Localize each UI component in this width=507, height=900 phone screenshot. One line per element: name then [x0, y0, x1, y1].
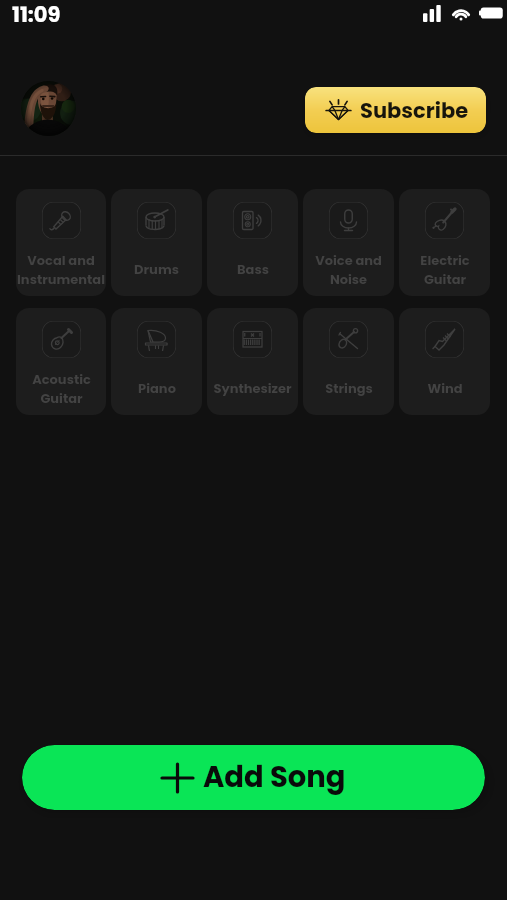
button[interactable]: Strings	[303, 308, 394, 415]
button[interactable]: Acoustic Guitar	[16, 308, 106, 415]
staticText: Electric Guitar	[420, 251, 470, 288]
staticText: 11:09	[12, 0, 61, 29]
button[interactable]: Voice and Noise	[303, 189, 394, 296]
button[interactable]: Profile	[21, 81, 76, 136]
button[interactable]: Electric Guitar	[399, 189, 490, 296]
button[interactable]: Subscribe	[305, 87, 486, 133]
staticText: Acoustic Guitar	[32, 370, 91, 407]
staticText: Synthesizer	[213, 379, 292, 397]
staticText: Wind	[427, 379, 463, 397]
button[interactable]: Synthesizer	[207, 308, 298, 415]
other: Wi-Fi	[451, 5, 471, 21]
button[interactable]: Bass	[207, 189, 298, 296]
button[interactable]: Drums	[111, 189, 202, 296]
staticText: Subscribe	[360, 96, 469, 125]
staticText: Voice and Noise	[315, 251, 382, 288]
button[interactable]: Piano	[111, 308, 202, 415]
other: Battery	[479, 6, 504, 20]
staticText: Bass	[237, 260, 269, 278]
button[interactable]: Vocal and Instrumental	[16, 189, 106, 296]
staticText: Add Song	[203, 757, 346, 798]
button[interactable]: Wind	[399, 308, 490, 415]
button[interactable]: Add Song	[22, 745, 485, 810]
staticText: Drums	[134, 260, 179, 278]
other: Cellular signal	[423, 5, 441, 22]
staticText: Piano	[138, 379, 176, 397]
staticText: Vocal and Instrumental	[17, 251, 105, 288]
staticText: Strings	[325, 379, 373, 397]
